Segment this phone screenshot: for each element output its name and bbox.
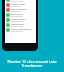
button[interactable]: Delta junction	[5, 7, 36, 12]
staticText: Offline 6h	[11, 10, 22, 12]
staticText: Online now	[11, 0, 23, 2]
staticText: Online now	[11, 20, 23, 22]
button[interactable]: Echo plant	[5, 12, 36, 17]
staticText: Offline 2h	[11, 5, 22, 7]
staticText: Foxtrot node	[11, 17, 26, 20]
button[interactable]: Golf feeder	[5, 22, 36, 27]
staticText: Golf feeder	[11, 22, 24, 25]
button[interactable]: Bravo substation	[5, 0, 36, 2]
staticText: Echo plant	[11, 12, 23, 15]
button[interactable]: Charlie relay	[5, 2, 36, 7]
staticText: Online now	[11, 25, 23, 27]
staticText: Online now	[11, 30, 23, 32]
button[interactable]: Foxtrot node	[5, 17, 36, 22]
staticText: Monitor 12 sites around Lake Transformer	[5, 59, 59, 68]
staticText: Online now	[11, 15, 23, 17]
staticText: Delta junction	[11, 7, 28, 10]
staticText: Hotel transformer	[11, 27, 32, 30]
staticText: Charlie relay	[11, 2, 26, 5]
button[interactable]: Hotel transformer	[5, 27, 36, 32]
